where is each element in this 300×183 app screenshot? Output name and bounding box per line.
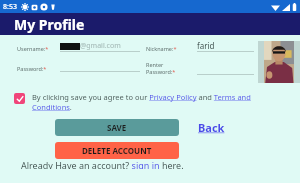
staticText: 8:53 [3,2,17,12]
staticText: Password:* [17,65,47,72]
staticText: Username:* [17,45,49,52]
staticText: By clicking save you agree to our Privac… [32,92,280,112]
button[interactable]: @gmail.com [60,41,140,52]
staticText: Nickname:* [146,45,177,52]
button[interactable]: Agree to terms [14,92,280,112]
staticText: My Profile [14,15,85,34]
button[interactable]: SAVE [55,119,179,136]
button[interactable]: farid [197,41,254,52]
button[interactable] [60,61,140,72]
staticText: Back [198,120,225,135]
staticText: Already Have an account? sign in here. [21,159,184,169]
staticText: SAVE [107,122,127,133]
staticText: Renter Password:* [146,61,194,75]
staticText: @gmail.com [80,41,121,51]
button[interactable]: DELETE ACCOUNT [55,142,179,159]
button[interactable]: Profile photo [264,41,294,83]
staticText: farid [197,40,215,51]
button[interactable]: Already Have an account? sign in here. [21,159,300,169]
button[interactable]: Back [198,120,225,135]
button[interactable] [197,64,254,75]
staticText: DELETE ACCOUNT [82,145,152,156]
other: Agree to terms [14,93,25,104]
